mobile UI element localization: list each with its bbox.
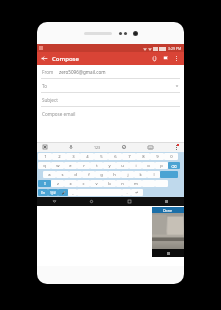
staticText: v [95, 181, 98, 187]
staticText: a [48, 172, 51, 178]
staticText: Compose email [42, 111, 76, 117]
staticText: b [108, 181, 111, 187]
button[interactable]: 9 [150, 153, 164, 160]
button[interactable]: From [42, 65, 179, 78]
staticText: To [42, 83, 48, 89]
button[interactable]: v [90, 180, 103, 187]
staticText: 🎤 [61, 191, 66, 195]
button[interactable]: Emoji [120, 143, 128, 151]
staticText: Subject [42, 97, 58, 103]
staticText: 1 [44, 154, 47, 160]
button[interactable]: q [38, 162, 51, 169]
button[interactable]: p [155, 162, 168, 169]
button[interactable]: 3 [66, 153, 80, 160]
button[interactable]: Compose email [42, 107, 179, 120]
button[interactable]: Menu [163, 198, 170, 205]
button[interactable]: m [129, 180, 142, 187]
button[interactable]: Keyboard [146, 143, 154, 151]
staticText: r [83, 163, 85, 169]
button[interactable]: Clipboard [41, 143, 49, 151]
button[interactable]: l [147, 171, 160, 178]
button[interactable]: Recents [126, 198, 133, 205]
staticText: i [135, 163, 137, 169]
button[interactable]: z [51, 180, 64, 187]
staticText: ⇧ [43, 181, 47, 186]
button[interactable]: 🎤 [58, 189, 68, 196]
button[interactable]: ⌫ [168, 162, 180, 169]
button[interactable] [155, 180, 168, 187]
staticText: 3 [72, 154, 75, 160]
button[interactable]: t [90, 162, 103, 169]
button[interactable]: Done [152, 207, 184, 213]
button[interactable]: Back [51, 198, 58, 205]
button[interactable] [142, 180, 155, 187]
staticText: 8 [142, 154, 145, 160]
button[interactable]: s [56, 171, 69, 178]
button[interactable]: 6 [108, 153, 122, 160]
button[interactable]: y [103, 162, 116, 169]
button[interactable]: Subject [42, 93, 179, 106]
staticText: p [160, 163, 163, 169]
staticText: y [108, 163, 111, 169]
staticText: zero5096@gmail.com [59, 69, 106, 75]
button[interactable] [160, 171, 178, 178]
button[interactable]: Send [161, 54, 170, 63]
staticText: . [126, 190, 128, 196]
staticText: z [57, 181, 59, 187]
button[interactable]: 8 [136, 153, 150, 160]
button[interactable]: g [95, 171, 108, 178]
button[interactable]: Settings [172, 143, 180, 151]
button[interactable]: ↵ [131, 189, 143, 196]
button[interactable]: e [64, 162, 77, 169]
staticText: s [61, 172, 64, 178]
button[interactable]: Voice input [67, 143, 75, 151]
button[interactable]: Back [40, 54, 49, 63]
button[interactable]: u [116, 162, 129, 169]
button[interactable]: ⇧ [38, 180, 51, 187]
button[interactable]: i [129, 162, 142, 169]
staticText: q [43, 163, 46, 169]
staticText: 0 [170, 154, 173, 160]
staticText: Compose [52, 55, 79, 63]
staticText: 5 [100, 154, 103, 160]
button[interactable]: a [43, 171, 56, 178]
button[interactable]: c [77, 180, 90, 187]
button[interactable]: . [122, 189, 131, 196]
staticText: l [153, 172, 155, 178]
staticText: o [147, 163, 150, 169]
staticText: 123 [94, 145, 101, 150]
button[interactable]: 4 [80, 153, 94, 160]
button[interactable]: 2 [52, 153, 66, 160]
button[interactable]: j [121, 171, 134, 178]
button[interactable]: Attach [150, 54, 159, 63]
button[interactable]: h [108, 171, 121, 178]
button[interactable]: !@# [48, 189, 58, 196]
staticText: ⌫ [171, 164, 177, 168]
button[interactable]: 5 [94, 153, 108, 160]
staticText: From [42, 69, 54, 75]
button[interactable]: d [69, 171, 82, 178]
button[interactable]: En [38, 189, 48, 196]
button[interactable]: o [142, 162, 155, 169]
button[interactable]: f [82, 171, 95, 178]
button[interactable]: 7 [122, 153, 136, 160]
staticText: k [139, 172, 142, 178]
button[interactable]: , [68, 189, 77, 196]
button[interactable]: 1 [38, 153, 52, 160]
button[interactable]: b [103, 180, 116, 187]
button[interactable]: Numbers [93, 143, 101, 151]
button[interactable]: 0 [164, 153, 178, 160]
button[interactable]: To [42, 79, 179, 92]
button[interactable]: n [116, 180, 129, 187]
staticText: h [113, 172, 116, 178]
button[interactable]: x [64, 180, 77, 187]
button[interactable]: k [134, 171, 147, 178]
staticText: e [69, 163, 72, 169]
button[interactable]: Home [88, 198, 95, 205]
staticText: t [96, 163, 98, 169]
button[interactable]: Image preview [152, 213, 184, 249]
button[interactable]: r [77, 162, 90, 169]
button[interactable]: More options [172, 54, 181, 63]
button[interactable]: w [51, 162, 64, 169]
